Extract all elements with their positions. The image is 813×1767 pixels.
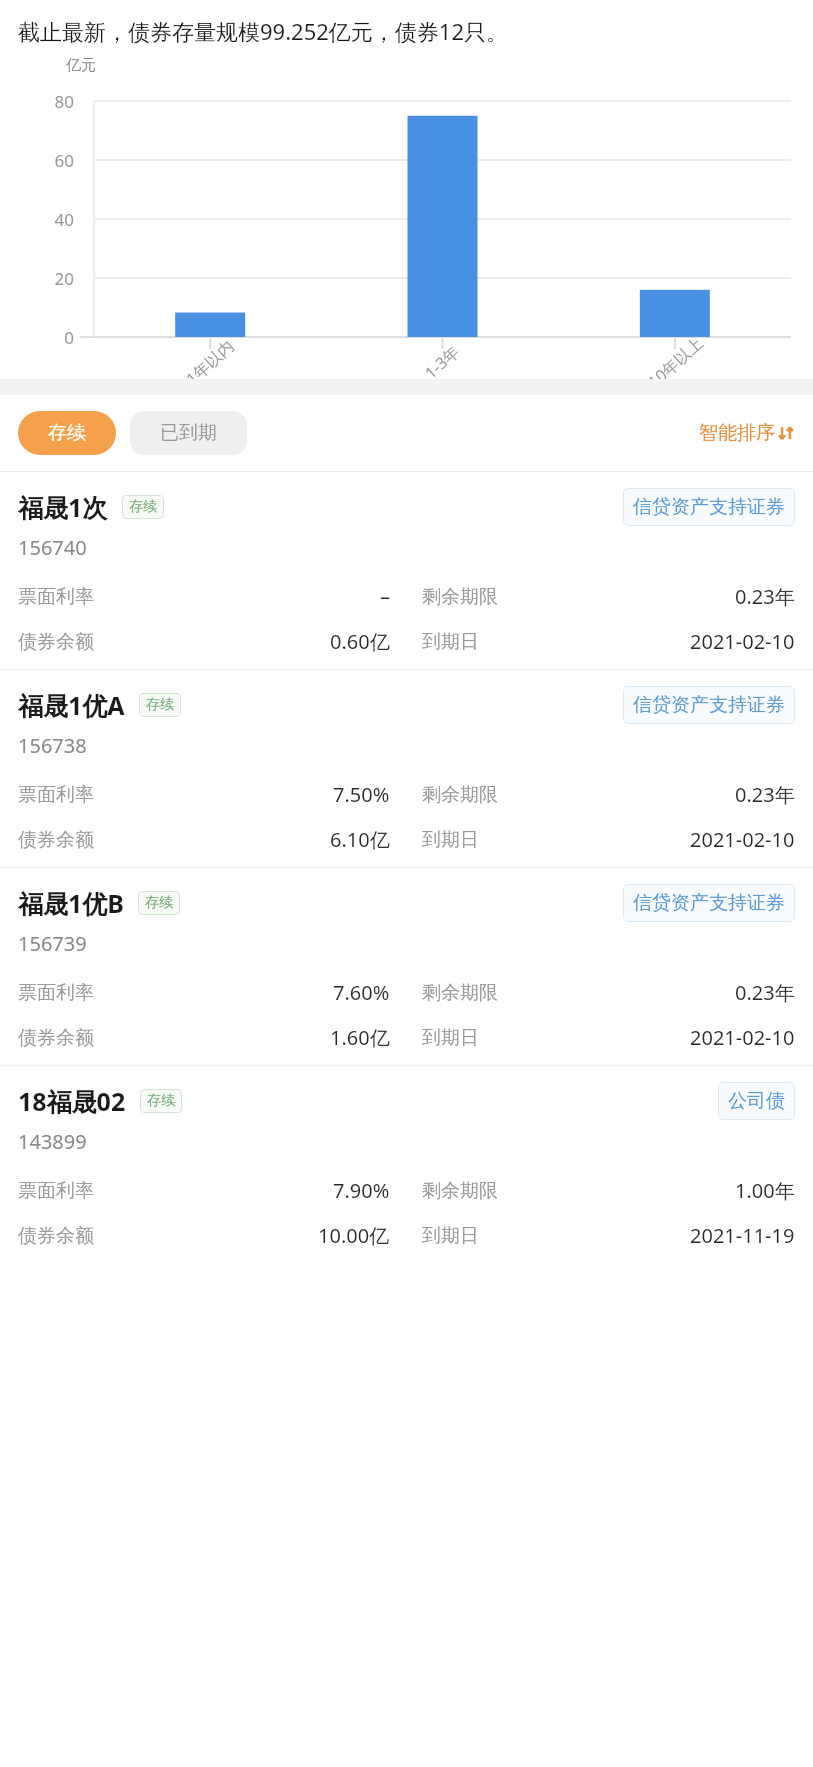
staticText: 剩余期限 <box>422 783 498 807</box>
staticText: 156739 <box>18 930 87 957</box>
staticText: – <box>380 583 390 610</box>
staticText: 存续 <box>48 421 86 445</box>
staticText: 7.60% <box>333 979 390 1006</box>
staticText: 票面利率 <box>18 981 94 1005</box>
staticText: 2021-11-19 <box>690 1222 795 1249</box>
staticText: 到期日 <box>422 630 479 654</box>
staticText: 10年以上 <box>643 331 708 393</box>
staticText: 18福晟02 <box>18 1084 126 1118</box>
staticText: 福晟1优B <box>18 886 124 920</box>
staticText: 剩余期限 <box>422 1179 498 1203</box>
staticText: 福晟1次 <box>18 490 108 524</box>
staticText: 剩余期限 <box>422 585 498 609</box>
staticText: 到期日 <box>422 1224 479 1248</box>
staticText: 156740 <box>18 534 87 561</box>
staticText: 到期日 <box>422 828 479 852</box>
staticText: 60 <box>54 149 74 172</box>
staticText: 0.60亿 <box>330 628 390 655</box>
staticText: 存续 <box>145 894 173 912</box>
staticText: 0.23年 <box>735 781 795 808</box>
button[interactable]: 福晟1次 <box>0 472 813 669</box>
staticText: 信贷资产支持证券 <box>633 891 785 915</box>
staticText: 7.90% <box>333 1177 390 1204</box>
staticText: 1-3年 <box>420 340 464 383</box>
button[interactable]: 已到期 <box>130 411 247 455</box>
staticText: 智能排序 <box>699 421 775 445</box>
staticText: 2021-02-10 <box>690 826 795 853</box>
staticText: 已到期 <box>160 421 217 445</box>
staticText: 存续 <box>147 1092 175 1110</box>
staticText: 20 <box>54 267 74 290</box>
staticText: 信贷资产支持证券 <box>633 495 785 519</box>
button[interactable]: 18福晟02 <box>0 1066 813 1263</box>
staticText: 票面利率 <box>18 585 94 609</box>
button[interactable]: 福晟1优B <box>0 868 813 1065</box>
staticText: 0.23年 <box>735 979 795 1006</box>
button[interactable]: 福晟1优A <box>0 670 813 867</box>
staticText: 1.60亿 <box>330 1024 390 1051</box>
staticText: 存续 <box>129 498 157 516</box>
staticText: 2021-02-10 <box>690 628 795 655</box>
button[interactable]: 智能排序 <box>699 413 795 453</box>
staticText: 公司债 <box>728 1089 785 1113</box>
staticText: 7.50% <box>333 781 390 808</box>
staticText: 债券余额 <box>18 828 94 852</box>
staticText: 0.23年 <box>735 583 795 610</box>
staticText: 80 <box>54 90 74 113</box>
staticText: 福晟1优A <box>18 688 125 722</box>
staticText: 债券余额 <box>18 1026 94 1050</box>
staticText: 143899 <box>18 1128 87 1155</box>
staticText: 2021-02-10 <box>690 1024 795 1051</box>
staticText: 债券余额 <box>18 630 94 654</box>
staticText: 剩余期限 <box>422 981 498 1005</box>
staticText: 截止最新，债券存量规模99.252亿元，债券12只。 <box>18 16 508 46</box>
staticText: 0 <box>64 326 74 349</box>
staticText: 亿元 <box>66 56 96 75</box>
staticText: 信贷资产支持证券 <box>633 693 785 717</box>
staticText: 债券余额 <box>18 1224 94 1248</box>
staticText: 1.00年 <box>735 1177 795 1204</box>
button[interactable]: 存续 <box>18 411 116 455</box>
staticText: 40 <box>54 208 74 231</box>
staticText: 1年以内 <box>181 334 239 390</box>
staticText: 存续 <box>146 696 174 714</box>
staticText: 票面利率 <box>18 1179 94 1203</box>
staticText: 票面利率 <box>18 783 94 807</box>
staticText: 156738 <box>18 732 87 759</box>
staticText: 6.10亿 <box>330 826 390 853</box>
staticText: 到期日 <box>422 1026 479 1050</box>
staticText: 10.00亿 <box>318 1222 390 1249</box>
